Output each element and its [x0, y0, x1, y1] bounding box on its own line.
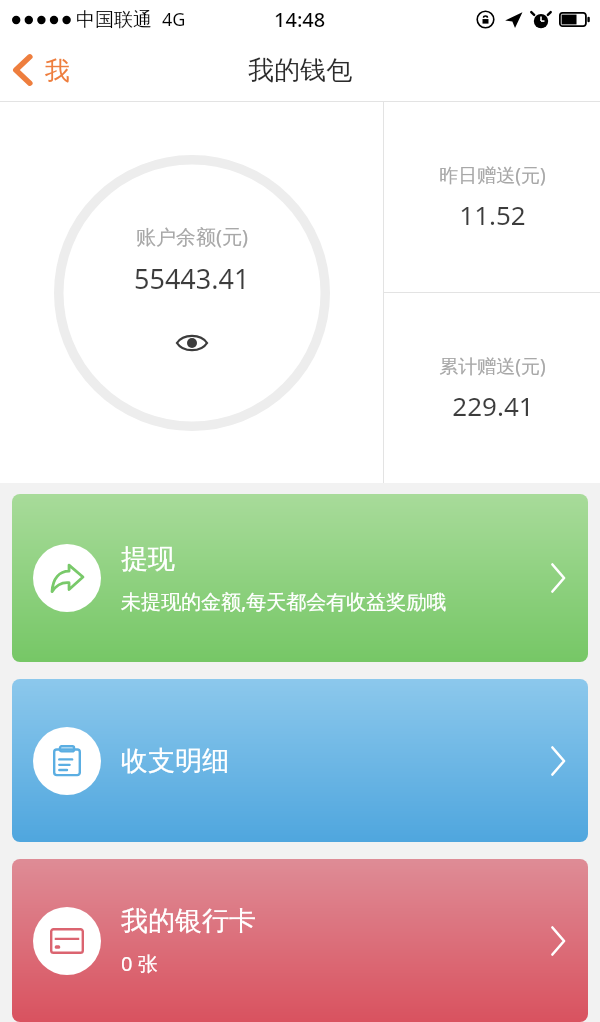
- staticText: 14:48: [274, 6, 326, 33]
- staticText: 229.41: [452, 388, 534, 423]
- button[interactable]: 累计赠送(元): [384, 293, 600, 483]
- staticText: 我的银行卡: [121, 904, 256, 938]
- staticText: 昨日赠送(元): [439, 162, 546, 188]
- button[interactable]: 收支明细: [12, 679, 588, 842]
- button[interactable]: 昨日赠送(元): [384, 102, 600, 292]
- staticText: 提现: [121, 542, 175, 576]
- button[interactable]: Toggle balance visibility: [172, 323, 212, 363]
- staticText: 55443.41: [134, 260, 250, 297]
- button[interactable]: 账户余额(元): [0, 102, 383, 483]
- button[interactable]: 我: [0, 38, 84, 102]
- staticText: 我: [45, 55, 70, 86]
- staticText: 中国联通: [76, 8, 152, 32]
- staticText: 收支明细: [121, 744, 229, 778]
- staticText: 未提现的金额,每天都会有收益奖励哦: [121, 588, 447, 615]
- staticText: 4G: [162, 7, 186, 32]
- button[interactable]: 我的银行卡: [12, 859, 588, 1022]
- staticText: 账户余额(元): [136, 223, 248, 250]
- button[interactable]: 提现: [12, 494, 588, 662]
- staticText: 累计赠送(元): [439, 353, 546, 379]
- staticText: 11.52: [459, 197, 526, 232]
- staticText: 我的钱包: [248, 54, 352, 87]
- staticText: 0 张: [121, 950, 158, 977]
